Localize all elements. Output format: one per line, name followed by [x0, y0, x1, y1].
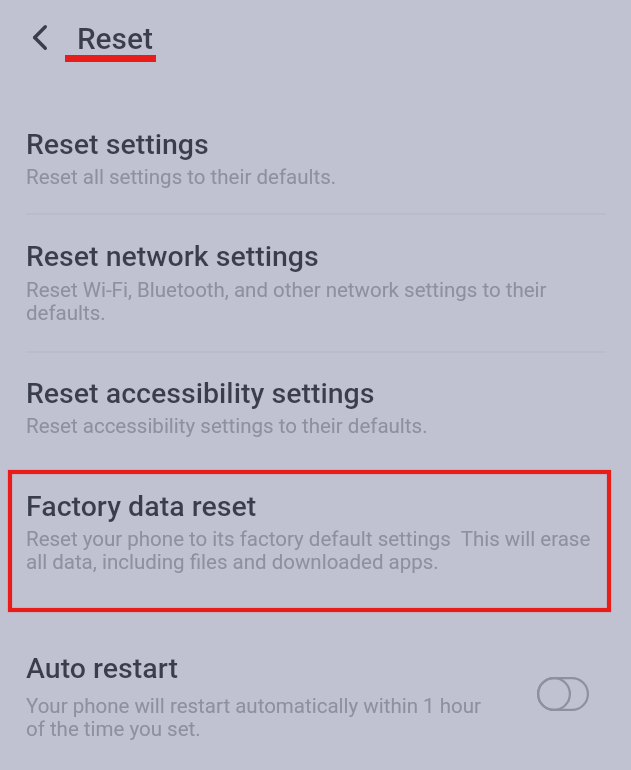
button[interactable]: Reset accessibility settings — [0, 353, 631, 470]
staticText: Reset all settings to their defaults. — [26, 165, 600, 189]
button[interactable]: Back — [19, 16, 61, 58]
staticText: Reset — [77, 21, 153, 56]
button[interactable]: Auto restart — [0, 630, 631, 755]
button[interactable]: Reset — [72, 12, 153, 60]
button[interactable]: Auto restart switch, off — [537, 677, 589, 711]
button[interactable]: Reset network settings — [0, 215, 631, 351]
staticText: Reset Wi-Fi, Bluetooth, and other networ… — [26, 278, 580, 325]
button[interactable]: Factory data reset — [0, 470, 631, 612]
staticText: Reset settings — [26, 128, 209, 161]
staticText: Reset your phone to its factory default … — [26, 527, 600, 574]
staticText: Your phone will restart automatically wi… — [26, 694, 492, 741]
staticText: Factory data reset — [26, 490, 257, 523]
button[interactable]: Reset settings — [0, 110, 631, 213]
staticText: Reset accessibility settings — [26, 377, 375, 410]
staticText: Auto restart — [26, 652, 178, 685]
staticText: Reset network settings — [26, 240, 319, 273]
staticText: Reset accessibility settings to their de… — [26, 414, 600, 438]
